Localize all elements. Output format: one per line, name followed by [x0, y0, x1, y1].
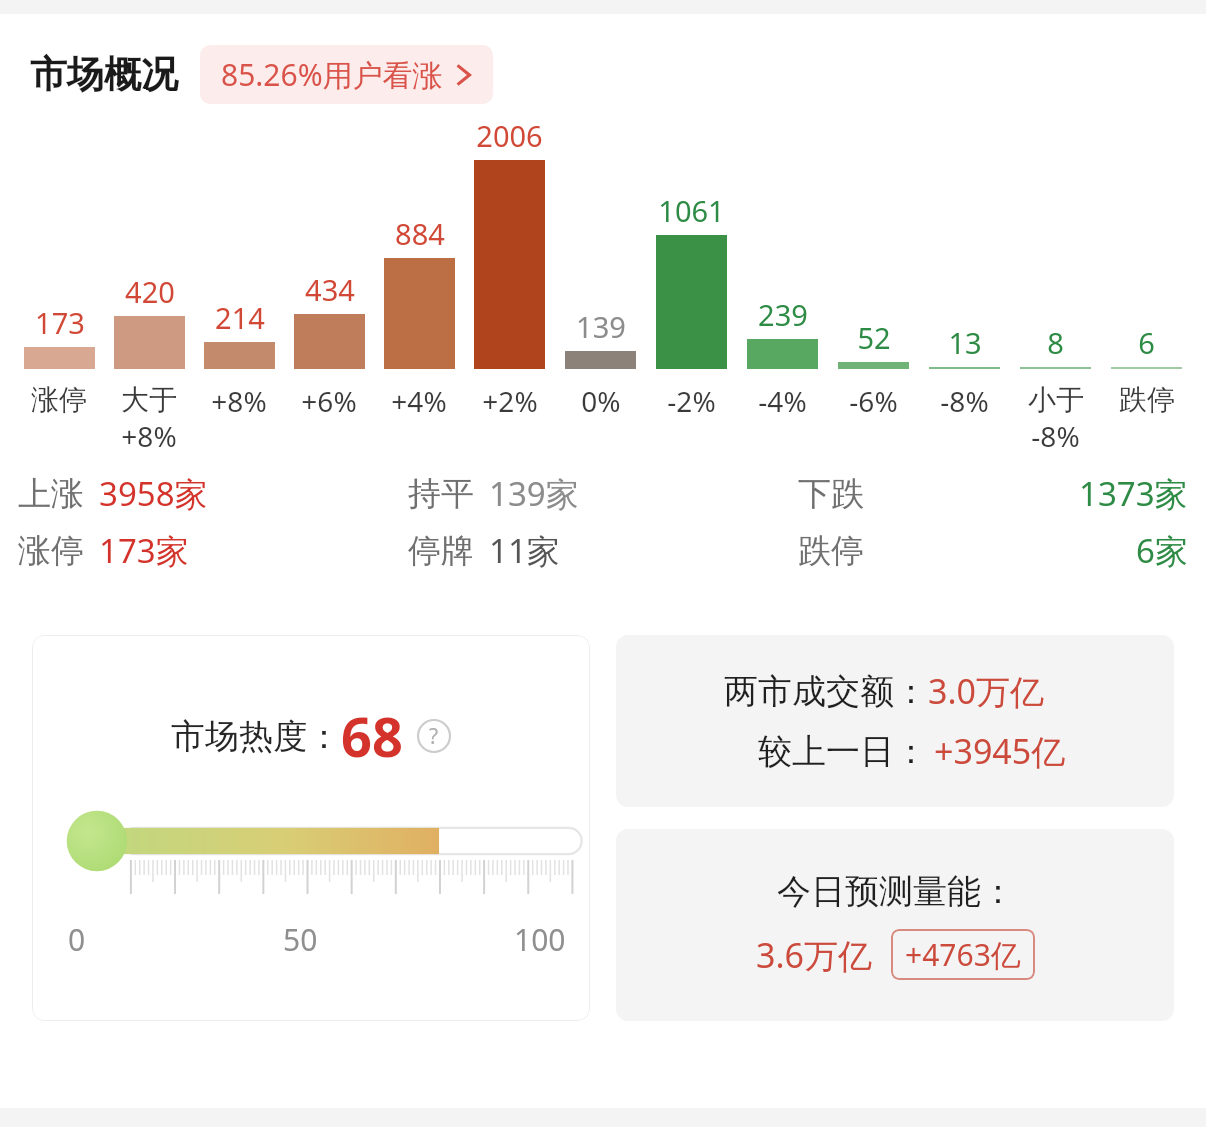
staticText: 420 — [125, 272, 175, 311]
staticText: 884 — [395, 214, 445, 253]
staticText: 1061 — [658, 191, 725, 230]
staticText: 50 — [283, 919, 318, 960]
staticText: 6 — [1138, 323, 1155, 362]
staticText: 173家 — [99, 528, 189, 573]
staticText: 0 — [68, 919, 86, 960]
staticText: 139家 — [489, 471, 579, 516]
staticText: 大于 — [121, 382, 177, 417]
staticText: 跌停 — [1119, 382, 1175, 417]
staticText: 8 — [1047, 323, 1064, 362]
staticText: 下跌 — [798, 473, 864, 515]
button[interactable]: 85.26%用户看涨 — [200, 45, 493, 104]
staticText: 较上一日： — [758, 730, 928, 773]
staticText: -4% — [758, 382, 807, 420]
staticText: 停牌 — [408, 530, 474, 572]
staticText: 涨停 — [31, 382, 87, 417]
staticText: +8% — [121, 417, 177, 455]
staticText: 68 — [341, 699, 403, 773]
staticText: 市场热度： — [171, 715, 341, 758]
staticText: -8% — [1031, 417, 1080, 455]
staticText: 6家 — [1136, 528, 1188, 573]
staticText: 434 — [305, 270, 355, 309]
staticText: 52 — [857, 318, 891, 357]
staticText: -8% — [940, 382, 989, 420]
staticText: +4% — [391, 382, 447, 420]
staticText: 214 — [215, 298, 265, 337]
button[interactable]: 今日预测量能： — [616, 829, 1174, 1021]
staticText: 上涨 — [18, 473, 84, 515]
staticText: ? — [429, 722, 439, 751]
button[interactable]: 市场热度： — [32, 635, 590, 1021]
staticText: 涨停 — [18, 530, 84, 572]
staticText: 139 — [576, 307, 626, 346]
button[interactable]: 两市成交额： — [616, 635, 1174, 807]
staticText: 11家 — [489, 528, 560, 573]
staticText: 持平 — [408, 473, 474, 515]
staticText: 173 — [35, 303, 85, 342]
button[interactable]: 帮助说明 — [417, 719, 451, 753]
staticText: 小于 — [1028, 382, 1084, 417]
staticText: +4763亿 — [905, 934, 1021, 975]
staticText: +3945亿 — [934, 728, 1066, 774]
staticText: -2% — [667, 382, 716, 420]
staticText: 市场概况 — [30, 51, 178, 98]
staticText: 3.0万亿 — [928, 668, 1045, 714]
staticText: 两市成交额： — [724, 670, 928, 713]
staticText: 1373家 — [1079, 471, 1188, 516]
staticText: 2006 — [476, 116, 543, 155]
staticText: 100 — [514, 919, 566, 960]
staticText: +2% — [482, 382, 538, 420]
staticText: 239 — [758, 295, 808, 334]
staticText: 跌停 — [798, 530, 864, 572]
staticText: 3.6万亿 — [756, 932, 873, 978]
staticText: 85.26%用户看涨 — [221, 54, 443, 95]
staticText: 0% — [581, 382, 621, 420]
staticText: 13 — [948, 323, 982, 362]
staticText: 今日预测量能： — [777, 870, 1015, 913]
staticText: 3958家 — [99, 471, 208, 516]
staticText: -6% — [849, 382, 898, 420]
staticText: +8% — [211, 382, 267, 420]
staticText: +6% — [301, 382, 357, 420]
